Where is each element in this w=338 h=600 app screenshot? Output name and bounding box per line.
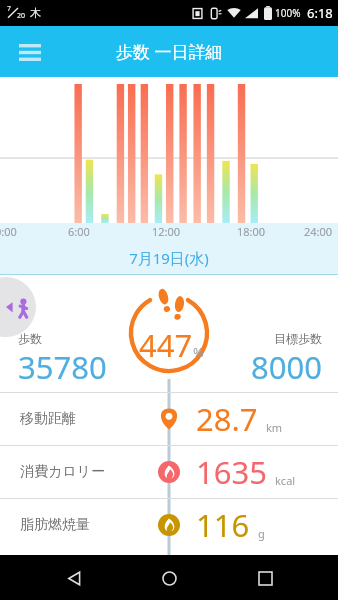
button[interactable]: 脂肪燃焼量 (0, 499, 338, 551)
staticText: 18:00 (237, 224, 266, 239)
staticText: 100% (275, 6, 301, 20)
staticText: 木 (30, 6, 41, 20)
button[interactable]: 移動距離 (0, 393, 338, 445)
staticText: 6:18 (307, 4, 333, 22)
staticText: 0:00 (0, 224, 17, 239)
staticText: 35780 (18, 346, 107, 388)
staticText: g (258, 526, 265, 541)
button[interactable]: Menu (10, 32, 50, 72)
staticText: 447 (139, 324, 193, 366)
button[interactable]: Back (52, 556, 96, 600)
staticText: kcal (275, 473, 296, 488)
staticText: 7月19日(水) (129, 248, 209, 268)
staticText: % (193, 343, 204, 361)
staticText: 8000 (251, 346, 322, 388)
staticText: 移動距離 (20, 410, 76, 428)
button[interactable]: Home (147, 556, 191, 600)
staticText: 1635 (196, 451, 267, 493)
staticText: 脂肪燃焼量 (20, 516, 90, 534)
staticText: 7 (7, 4, 12, 14)
staticText: 目標歩数 (274, 331, 322, 346)
staticText: 28.7 (196, 398, 258, 440)
staticText: 12:00 (152, 224, 181, 239)
button[interactable]: Previous activity (0, 277, 36, 337)
button[interactable]: Recents (243, 556, 287, 600)
staticText: 116 (196, 504, 250, 546)
staticText: 消費カロリー (20, 463, 105, 481)
staticText: 20 (17, 11, 26, 21)
staticText: 歩数 一日詳細 (116, 40, 223, 63)
staticText: 歩数 (18, 331, 42, 346)
staticText: 24:00 (304, 224, 333, 239)
button[interactable]: 消費カロリー (0, 446, 338, 498)
staticText: km (266, 420, 283, 435)
staticText: 6:00 (68, 224, 90, 239)
